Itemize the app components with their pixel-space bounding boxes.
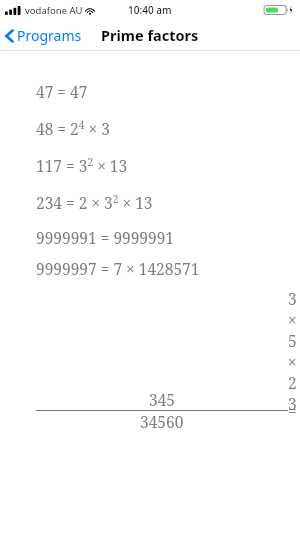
staticText: 34560	[140, 411, 184, 432]
staticText: 47 = 47	[36, 81, 88, 102]
staticText: 117 = 32 × 13	[36, 155, 128, 176]
staticText: vodafone AU	[25, 4, 83, 17]
button[interactable]: Programs	[0, 22, 90, 49]
staticText: 48 = 24 × 3	[36, 118, 110, 139]
staticText: 9999991 = 9999991	[36, 227, 175, 248]
staticText: Programs	[17, 26, 82, 45]
staticText: Prime factors	[101, 25, 199, 45]
staticText: 234 = 2 × 32 × 13	[36, 192, 153, 213]
staticText: 345	[149, 389, 175, 410]
staticText: 9999997 = 7 × 1428571	[36, 258, 200, 279]
staticText: 10:40 am	[128, 3, 172, 17]
